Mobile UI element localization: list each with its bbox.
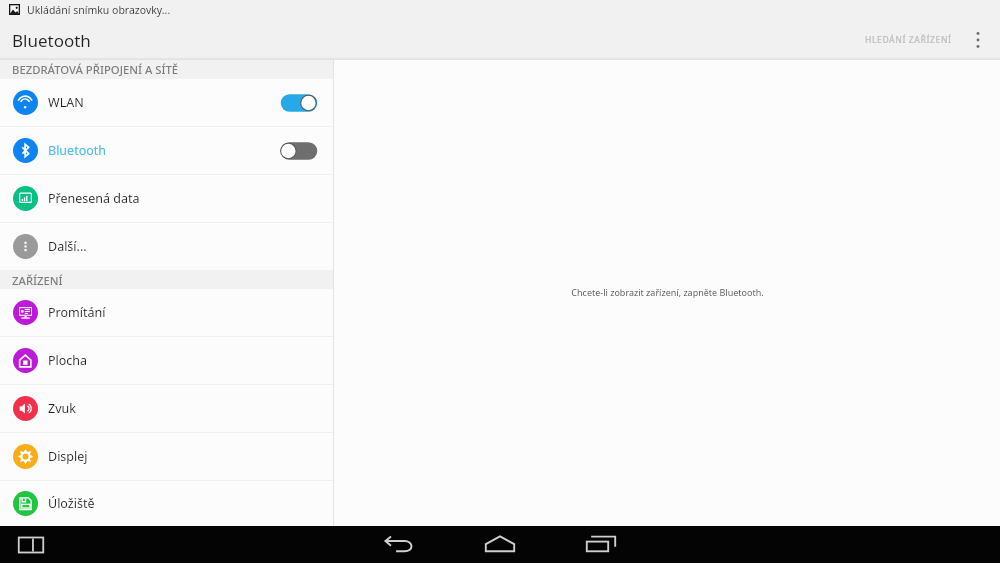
button[interactable]: Home [475, 527, 525, 563]
staticText: Bluetooth [48, 142, 107, 159]
staticText: WLAN [48, 94, 84, 111]
button[interactable]: Recent apps [576, 527, 626, 563]
button[interactable]: Bluetooth [0, 127, 333, 174]
button[interactable]: Plocha [0, 337, 333, 384]
staticText: Plocha [48, 352, 88, 369]
staticText: Chcete-li zobrazit zařízení, zapněte Blu… [571, 286, 764, 298]
staticText: Bluetooth [12, 29, 91, 52]
button[interactable]: Přenesená data [0, 175, 333, 222]
button[interactable]: Split screen [13, 527, 49, 563]
staticText: BEZDRÁTOVÁ PŘIPOJENÍ A SÍTĚ [12, 62, 179, 77]
staticText: Zvuk [48, 400, 76, 417]
button[interactable]: WLAN [0, 79, 333, 126]
button[interactable]: Switch on [279, 91, 319, 115]
button[interactable]: Zvuk [0, 385, 333, 432]
staticText: HLEDÁNÍ ZAŘÍZENÍ [865, 34, 952, 46]
staticText: Přenesená data [48, 190, 140, 207]
button[interactable]: HLEDÁNÍ ZAŘÍZENÍ [855, 25, 962, 55]
button[interactable]: Další... [0, 223, 333, 270]
staticText: Ukládání snímku obrazovky... [27, 3, 171, 17]
staticText: Displej [48, 448, 88, 465]
button[interactable]: Back [374, 527, 424, 563]
staticText: Promítání [48, 304, 106, 321]
button[interactable]: Switch off [279, 139, 319, 163]
button[interactable]: Úložiště [0, 481, 333, 526]
button[interactable]: More options [963, 25, 993, 55]
staticText: ZAŘÍZENÍ [12, 273, 63, 288]
button[interactable]: Displej [0, 433, 333, 480]
staticText: Další... [48, 238, 87, 255]
button[interactable]: Promítání [0, 289, 333, 336]
staticText: Úložiště [48, 495, 95, 512]
